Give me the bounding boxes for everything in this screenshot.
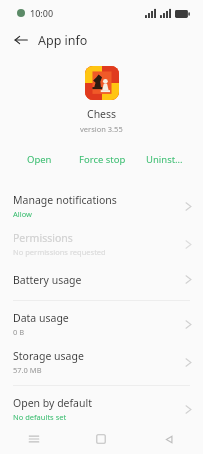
button[interactable]: Open [8,148,71,171]
button[interactable]: Data usage [0,305,203,343]
staticText: App info [38,32,88,49]
button[interactable]: Manage notifications [0,187,203,225]
staticText: Manage notifications [13,193,117,207]
staticText: Chess [87,107,117,121]
staticText: Uninst… [146,153,183,166]
staticText: Battery usage [13,273,82,287]
staticText: Open [27,153,52,166]
staticText: Data usage [13,311,69,325]
staticText: Open by default [13,396,93,410]
staticText: Storage usage [13,349,84,363]
button[interactable]: Open by default [0,390,203,428]
button[interactable]: Back [135,424,203,454]
staticText: 57.0 MB [13,365,42,375]
staticText: 0 B [13,327,25,337]
button[interactable]: Storage usage [0,343,203,381]
staticText: Permissions [13,231,73,245]
staticText: 10:00 [30,7,54,19]
staticText: Allow [13,209,32,219]
button[interactable]: Force stop [71,148,133,171]
button[interactable]: Back [8,27,34,53]
button[interactable]: Uninst… [133,148,195,171]
button[interactable]: Recent apps [0,424,67,454]
staticText: version 3.55 [80,124,123,134]
staticText: Force stop [79,153,126,166]
staticText: No defaults set [13,412,67,422]
button[interactable]: Home [67,424,135,454]
button[interactable]: Battery usage [0,263,203,296]
staticText: No permissions requested [13,247,106,257]
